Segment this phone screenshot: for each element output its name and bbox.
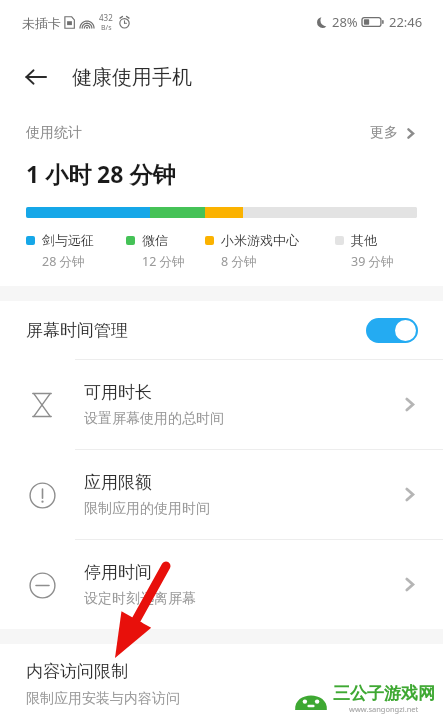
staticText: 8 分钟 bbox=[221, 253, 257, 270]
staticText: 1 小时 28 分钟 bbox=[26, 158, 176, 189]
staticText: 小米游戏中心 bbox=[221, 232, 299, 248]
button[interactable]: 应用限额 bbox=[0, 450, 443, 539]
staticText: 39 分钟 bbox=[351, 253, 394, 270]
button[interactable]: 屏幕时间管理 bbox=[0, 301, 443, 359]
button[interactable]: 停用时间 bbox=[0, 540, 443, 629]
staticText: 剑与远征 bbox=[42, 232, 94, 248]
staticText: 健康使用手机 bbox=[72, 65, 192, 90]
button[interactable]: 返回 bbox=[14, 55, 58, 99]
staticText: 微信 bbox=[142, 232, 168, 248]
staticText: 其他 bbox=[351, 232, 377, 248]
staticText: 限制应用的使用时间 bbox=[84, 500, 210, 518]
staticText: 432 bbox=[99, 12, 113, 23]
staticText: 22:46 bbox=[389, 13, 423, 31]
staticText: 设置屏幕使用的总时间 bbox=[84, 410, 224, 428]
staticText: 更多 bbox=[370, 124, 398, 142]
staticText: 未插卡 bbox=[22, 15, 61, 31]
staticText: 28% bbox=[332, 13, 358, 31]
button[interactable]: 可用时长 bbox=[0, 360, 443, 449]
staticText: 可用时长 bbox=[84, 382, 152, 403]
staticText: 设定时刻远离屏幕 bbox=[84, 590, 196, 608]
staticText: 应用限额 bbox=[84, 472, 152, 493]
staticText: 28 分钟 bbox=[42, 253, 85, 270]
button[interactable]: 内容访问限制 bbox=[0, 644, 443, 708]
staticText: B/s bbox=[101, 23, 112, 33]
button[interactable]: 更多 bbox=[370, 124, 417, 142]
staticText: 停用时间 bbox=[84, 562, 152, 583]
staticText: 限制应用安装与内容访问 bbox=[26, 690, 180, 708]
staticText: 内容访问限制 bbox=[26, 661, 128, 682]
staticText: 屏幕时间管理 bbox=[26, 320, 128, 341]
staticText: 12 分钟 bbox=[142, 253, 185, 270]
staticText: www.sangongzi.net bbox=[349, 704, 419, 714]
staticText: 三公子游戏网 bbox=[333, 683, 435, 704]
staticText: 使用统计 bbox=[26, 124, 82, 142]
